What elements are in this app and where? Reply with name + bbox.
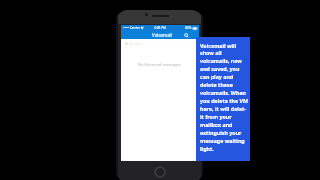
staticText: Voicemail will show all voicemails, new … (200, 42, 248, 153)
staticText: 84% (185, 26, 192, 30)
staticText: 3:05 PM (154, 26, 166, 30)
staticText: Voicemail (152, 32, 172, 38)
staticText: No Voicemail messages (138, 62, 182, 67)
staticText: Greeting (129, 42, 143, 46)
staticText: ••••• Carrier ▼ (123, 26, 144, 30)
button[interactable]: Search (183, 32, 190, 39)
